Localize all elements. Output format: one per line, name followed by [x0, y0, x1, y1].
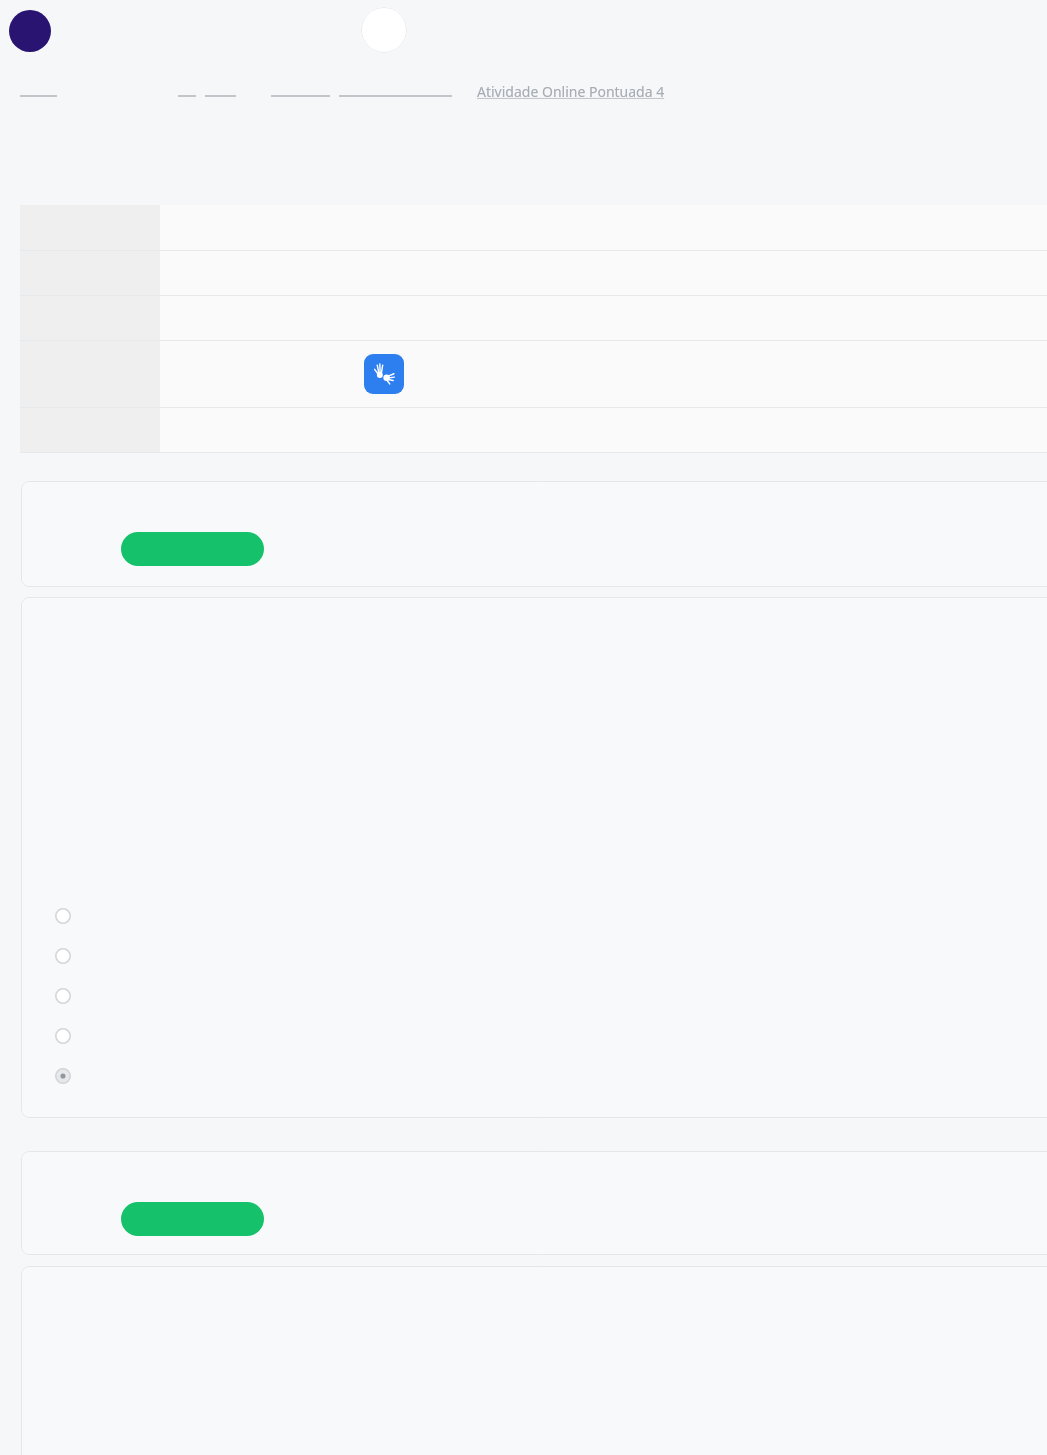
- button[interactable]: Perfil: [361, 7, 407, 53]
- button[interactable]: [0, 205, 1047, 250]
- button[interactable]: VLibras acessibilidade: [364, 354, 404, 394]
- button[interactable]: Enviar: [121, 532, 264, 566]
- button[interactable]: [0, 408, 1047, 452]
- staticText: Atividade Online Pontuada 4: [477, 82, 665, 101]
- button[interactable]: Atividade Online Pontuada 4: [473, 78, 669, 105]
- button[interactable]: Enviar: [21, 1151, 1047, 1255]
- button[interactable]: Enviar: [21, 481, 1047, 587]
- button[interactable]: [0, 296, 1047, 340]
- button[interactable]: Enviar: [121, 1202, 264, 1236]
- button[interactable]: [0, 251, 1047, 295]
- button[interactable]: Logo: [9, 10, 51, 52]
- button[interactable]: VLibras acessibilidade: [0, 341, 1047, 407]
